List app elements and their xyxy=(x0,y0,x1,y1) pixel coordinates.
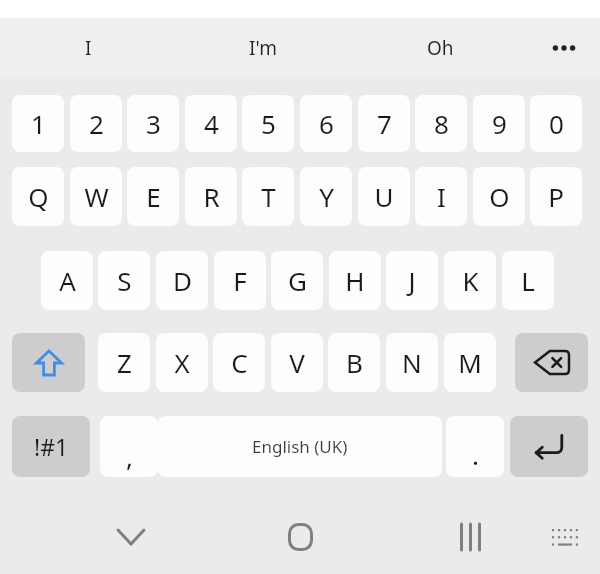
button[interactable]: J xyxy=(386,251,438,310)
button[interactable]: U xyxy=(358,167,410,226)
staticText: H xyxy=(345,263,365,298)
staticText: , xyxy=(126,439,133,474)
staticText: B xyxy=(346,345,363,380)
staticText: V xyxy=(289,345,305,380)
staticText: I xyxy=(437,179,446,214)
button[interactable]: Recent apps xyxy=(442,509,498,565)
button[interactable]: K xyxy=(444,251,496,310)
button[interactable]: 5 xyxy=(242,95,294,152)
button[interactable]: I xyxy=(415,167,467,226)
button[interactable]: Hide keyboard xyxy=(103,509,159,565)
staticText: L xyxy=(521,263,535,298)
button[interactable]: W xyxy=(70,167,122,226)
staticText: English (UK) xyxy=(252,435,348,458)
button[interactable]: 4 xyxy=(185,95,237,152)
button[interactable]: R xyxy=(185,167,237,226)
button[interactable]: D xyxy=(156,251,208,310)
staticText: G xyxy=(288,263,307,298)
staticText: 9 xyxy=(492,106,507,141)
button[interactable]: 3 xyxy=(127,95,179,152)
staticText: O xyxy=(489,179,510,214)
staticText: J xyxy=(408,263,416,298)
button[interactable]: 9 xyxy=(473,95,525,152)
staticText: 3 xyxy=(146,106,161,141)
staticText: T xyxy=(261,179,276,214)
button[interactable]: Q xyxy=(12,167,64,226)
button[interactable]: F xyxy=(214,251,266,310)
button[interactable]: O xyxy=(473,167,525,226)
button[interactable]: V xyxy=(271,333,323,392)
button[interactable]: L xyxy=(502,251,554,310)
button[interactable]: Home xyxy=(272,509,328,565)
button[interactable]: E xyxy=(127,167,179,226)
button[interactable]: B xyxy=(328,333,380,392)
staticText: . xyxy=(472,437,479,472)
button[interactable]: 7 xyxy=(358,95,410,152)
button[interactable]: 0 xyxy=(530,95,582,152)
staticText: 2 xyxy=(89,106,104,141)
button[interactable]: , xyxy=(100,416,158,477)
button[interactable]: !#1 xyxy=(12,416,90,477)
button[interactable]: A xyxy=(41,251,93,310)
staticText: K xyxy=(462,263,479,298)
staticText: X xyxy=(174,345,190,380)
button[interactable]: S xyxy=(98,251,150,310)
button[interactable]: Z xyxy=(98,333,150,392)
staticText: 1 xyxy=(31,106,46,141)
staticText: 4 xyxy=(204,106,219,141)
staticText: I'm xyxy=(249,35,277,61)
button[interactable]: Backspace xyxy=(515,333,588,392)
staticText: !#1 xyxy=(34,431,69,462)
button[interactable]: M xyxy=(444,333,496,392)
button[interactable]: N xyxy=(386,333,438,392)
staticText: F xyxy=(233,263,247,298)
staticText: 0 xyxy=(549,106,564,141)
staticText: S xyxy=(117,263,132,298)
button[interactable]: 1 xyxy=(12,95,64,152)
button[interactable]: Oh xyxy=(380,18,500,78)
staticText: Z xyxy=(117,345,132,380)
staticText: 5 xyxy=(261,106,276,141)
staticText: R xyxy=(203,179,220,214)
staticText: U xyxy=(374,179,394,214)
staticText: A xyxy=(59,263,76,298)
staticText: Y xyxy=(319,179,334,214)
staticText: Q xyxy=(28,179,49,214)
button[interactable]: Change keyboard xyxy=(537,509,593,565)
staticText: 8 xyxy=(434,106,449,141)
button[interactable]: I xyxy=(28,18,148,78)
staticText: Oh xyxy=(427,35,454,61)
staticText: M xyxy=(458,345,482,380)
staticText: P xyxy=(548,179,564,214)
button[interactable]: 6 xyxy=(300,95,352,152)
button[interactable]: G xyxy=(271,251,323,310)
button[interactable]: X xyxy=(156,333,208,392)
button[interactable]: More options xyxy=(528,18,600,78)
button[interactable]: 2 xyxy=(70,95,122,152)
staticText: I xyxy=(85,35,92,61)
button[interactable]: T xyxy=(242,167,294,226)
staticText: 7 xyxy=(377,106,392,141)
button[interactable]: Shift xyxy=(12,333,85,392)
staticText: W xyxy=(84,179,109,214)
button[interactable]: I'm xyxy=(203,18,323,78)
button[interactable]: H xyxy=(329,251,381,310)
staticText: E xyxy=(146,179,161,214)
button[interactable]: P xyxy=(530,167,582,226)
button[interactable]: Enter xyxy=(510,416,588,477)
staticText: C xyxy=(231,345,248,380)
button[interactable]: 8 xyxy=(415,95,467,152)
staticText: 6 xyxy=(319,106,334,141)
button[interactable]: C xyxy=(213,333,265,392)
button[interactable]: English (UK) xyxy=(158,416,442,477)
staticText: N xyxy=(402,345,422,380)
button[interactable]: Y xyxy=(300,167,352,226)
button[interactable]: . xyxy=(446,416,504,477)
staticText: D xyxy=(173,263,192,298)
